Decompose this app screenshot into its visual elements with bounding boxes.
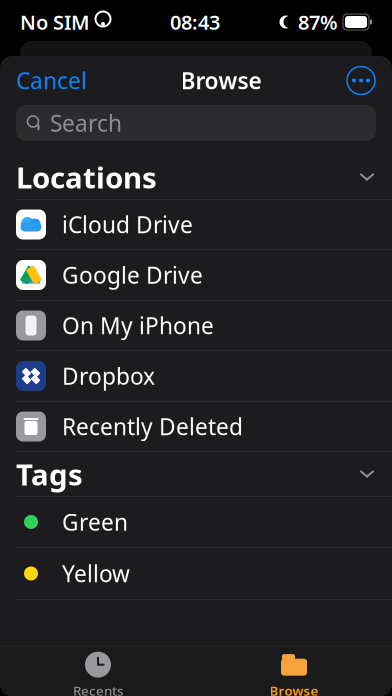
staticText: Dropbox (62, 361, 155, 391)
staticText: On My iPhone (62, 310, 214, 340)
button[interactable]: iCloud Drive (0, 199, 392, 249)
button[interactable]: Collapse Tags (350, 457, 384, 491)
staticText: iCloud Drive (62, 209, 193, 239)
staticText: Browse (180, 65, 261, 95)
staticText: Cancel (16, 65, 87, 95)
staticText: Locations (16, 157, 157, 196)
staticText: Search (50, 108, 122, 138)
button[interactable]: Yellow (0, 548, 392, 599)
button[interactable]: Collapse Locations (350, 160, 384, 194)
button[interactable]: Cancel (0, 58, 103, 102)
staticText: Browse (269, 682, 318, 696)
staticText: 87% (298, 9, 338, 35)
button[interactable]: Green (0, 496, 392, 547)
staticText: Recently Deleted (62, 411, 243, 441)
button[interactable]: Recents (0, 644, 196, 696)
staticText: Yellow (62, 558, 130, 588)
button[interactable]: Recently Deleted (0, 401, 392, 451)
button[interactable]: Google Drive (0, 250, 392, 300)
staticText: Tags (16, 454, 83, 493)
staticText: Recents (73, 682, 123, 696)
button[interactable]: Dropbox (0, 351, 392, 401)
button[interactable]: On My iPhone (0, 300, 392, 350)
button[interactable]: Browse (196, 644, 392, 696)
staticText: 08:43 (170, 9, 220, 35)
staticText: Google Drive (62, 260, 203, 290)
staticText: Green (62, 507, 128, 537)
staticText: No SIM (20, 9, 90, 35)
button[interactable]: Search (16, 105, 376, 141)
button[interactable]: More options (339, 58, 383, 102)
